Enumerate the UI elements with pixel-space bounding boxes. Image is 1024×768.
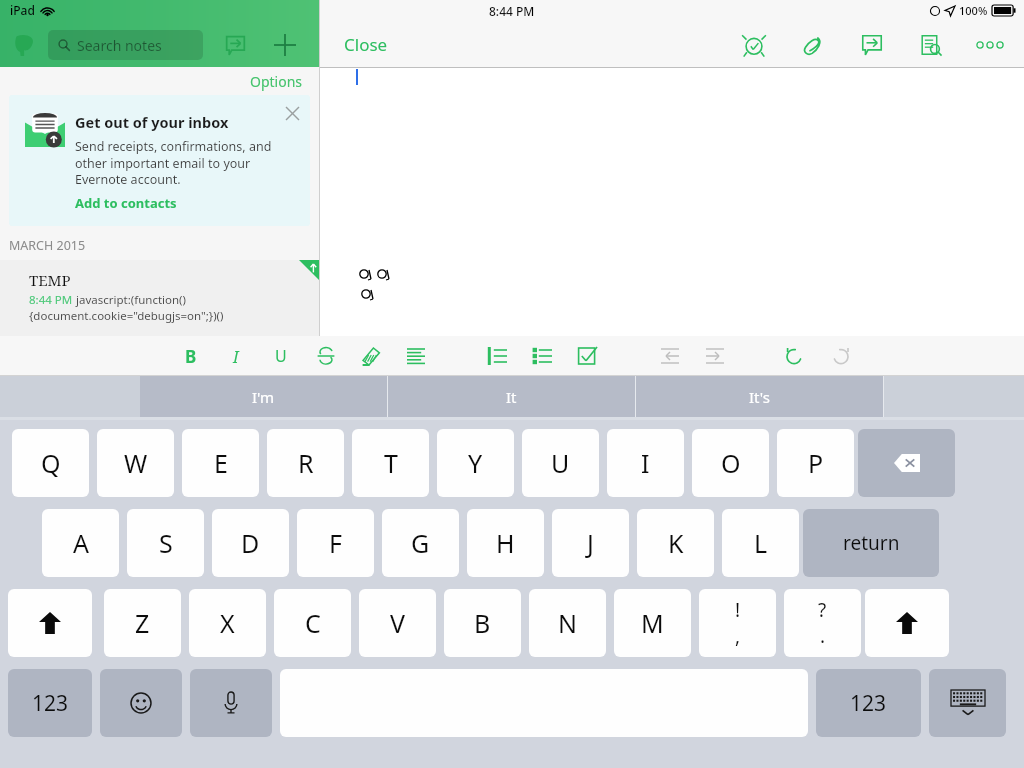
staticText: B [185,345,197,368]
button[interactable]: H [467,509,544,577]
button[interactable]: B [444,589,521,657]
staticText: W [124,446,148,480]
staticText: P [808,446,824,480]
button[interactable]: Hide keyboard [929,669,1006,737]
button[interactable]: More options [968,23,1012,67]
button[interactable]: ! [699,589,776,657]
button[interactable]: M [614,589,691,657]
staticText: It [506,387,517,407]
staticText: H [496,526,515,560]
staticText: It's [749,387,770,407]
staticText: I [233,345,239,368]
button[interactable]: Return [803,509,939,577]
button[interactable]: Close [338,27,394,62]
staticText: Y [468,446,483,480]
button[interactable]: Search notes [48,30,203,60]
staticText: K [668,526,684,560]
button[interactable]: Undo [771,337,816,375]
button[interactable]: ? [784,589,861,657]
button[interactable]: It [388,376,635,417]
staticText: ! [735,597,741,623]
button[interactable]: D [212,509,289,577]
button[interactable]: K [637,509,714,577]
button[interactable]: Redo [818,337,863,375]
button[interactable]: Emoji [100,669,182,737]
button[interactable]: Backspace [858,429,955,497]
button[interactable]: J [552,509,629,577]
staticText: A [73,526,89,560]
button[interactable]: Bold [168,337,213,375]
staticText: I'm [252,387,275,407]
button[interactable]: Dismiss [280,101,304,125]
button[interactable]: Get out of your inbox [9,95,310,226]
button[interactable]: New note [267,27,303,63]
button[interactable]: E [182,429,259,497]
button[interactable]: A [42,509,119,577]
staticText: Close [344,33,388,56]
button[interactable]: Note info [909,23,953,67]
staticText: 100% [959,3,988,18]
button[interactable]: N [529,589,606,657]
button[interactable]: V [359,589,436,657]
button[interactable]: X [189,589,266,657]
button[interactable]: R [267,429,344,497]
button[interactable]: Highlight [348,337,393,375]
staticText: Z [135,606,150,640]
button[interactable]: Indent [692,337,737,375]
button[interactable]: Q [12,429,89,497]
button[interactable]: Add to contacts [75,194,177,212]
staticText: X [220,606,235,640]
button[interactable]: O [692,429,769,497]
button[interactable]: G [382,509,459,577]
button[interactable]: Checklist [564,337,609,375]
button[interactable]: P [777,429,854,497]
button[interactable]: I'm [140,376,387,417]
staticText: J [587,526,594,560]
button[interactable]: Align [393,337,438,375]
button[interactable]: Dictation [190,669,272,737]
staticText: Search notes [77,36,162,55]
button[interactable]: Share [850,23,894,67]
staticText: U [275,345,287,367]
button[interactable]: C [274,589,351,657]
button[interactable]: Shift [8,589,92,657]
staticText: V [390,606,406,640]
staticText: 8:44 PM [489,3,535,19]
staticText: 123 [32,689,69,718]
button[interactable]: Attach [791,23,835,67]
staticText: D [241,526,260,560]
button[interactable]: Options [250,72,303,91]
staticText: ? [818,597,827,623]
button[interactable]: T [352,429,429,497]
staticText: iPad [10,2,35,18]
button[interactable]: Numbered list [474,337,519,375]
staticText: I [641,446,650,480]
button[interactable]: Underline [258,337,303,375]
button[interactable]: S [127,509,204,577]
button[interactable]: Italic [213,337,258,375]
button[interactable]: Strikethrough [303,337,348,375]
button[interactable]: Shift [865,589,949,657]
button[interactable]: TEMP [0,260,319,336]
button[interactable]: Z [104,589,181,657]
button[interactable]: I [607,429,684,497]
button[interactable]: Outdent [647,337,692,375]
button[interactable]: Share [217,27,253,63]
button[interactable]: Reminder [732,23,776,67]
staticText: . [820,623,826,649]
button[interactable]: Evernote menu [8,28,42,62]
button[interactable]: W [97,429,174,497]
button[interactable]: F [297,509,374,577]
button[interactable]: L [722,509,799,577]
button[interactable]: U [522,429,599,497]
staticText: M [641,606,664,640]
button[interactable]: Numbers [816,669,921,737]
staticText: Q [41,446,61,480]
button[interactable]: It's [636,376,883,417]
button[interactable]: Bulleted list [519,337,564,375]
staticText: Get out of your inbox [75,112,229,132]
button[interactable]: Numbers [8,669,92,737]
staticText: T [384,446,398,480]
button[interactable]: Y [437,429,514,497]
